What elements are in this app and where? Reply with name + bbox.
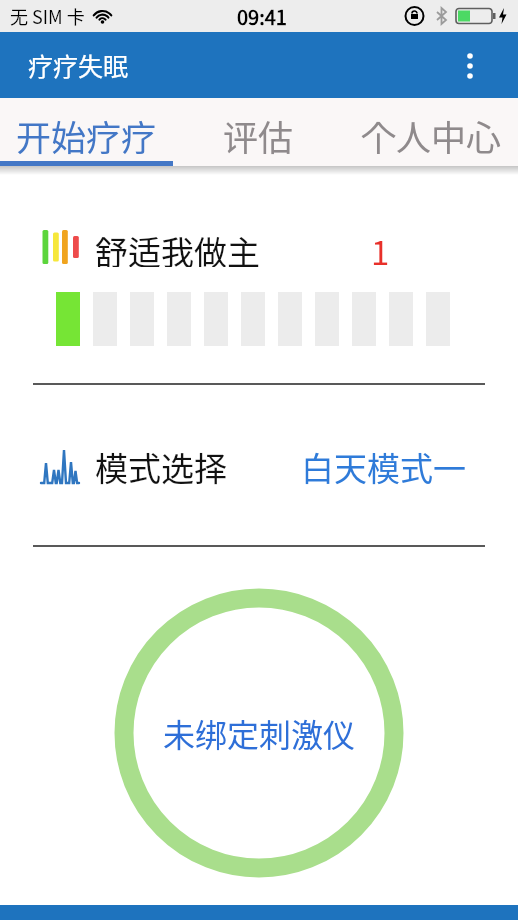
staticText: 无 SIM 卡 (10, 3, 85, 29)
staticText: 未绑定刺激仪 (163, 710, 356, 756)
staticText: 开始疗疗 (16, 110, 157, 161)
button[interactable]: 个人中心 (345, 98, 518, 166)
button[interactable]: 未绑定刺激仪 (114, 588, 404, 878)
button[interactable]: 模式选择 (41, 443, 466, 491)
staticText: 舒适我做主 (95, 227, 260, 267)
button[interactable]: 评估 (172, 98, 345, 166)
staticText: 1 (371, 227, 390, 267)
button[interactable]: 舒适我做主 (42, 227, 390, 267)
staticText: 模式选择 (95, 443, 227, 491)
staticText: 白天模式一 (301, 443, 466, 491)
button[interactable] (458, 53, 482, 77)
button[interactable]: 开始疗疗 (0, 98, 172, 166)
staticText: 评估 (223, 110, 294, 161)
staticText: 09:41 (237, 2, 287, 31)
staticText: 个人中心 (361, 110, 502, 161)
staticText: 疗疗失眠 (28, 47, 129, 83)
